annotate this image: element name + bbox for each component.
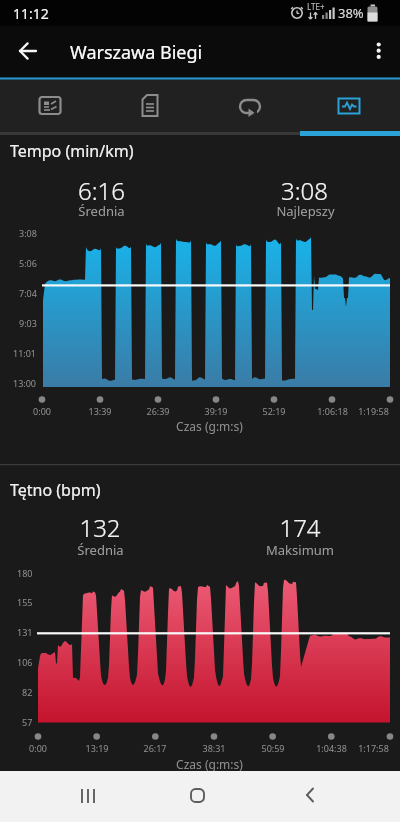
staticText: 0:00 [29, 742, 47, 754]
staticText: Czas (g:m:s) [176, 418, 243, 434]
staticText: 52:19 [262, 405, 286, 417]
staticText: Tętno (bpm) [10, 479, 101, 501]
staticText: LTE+ [307, 1, 325, 12]
staticText: 26:39 [146, 405, 170, 417]
button[interactable] [0, 80, 100, 135]
staticText: 0:00 [33, 405, 51, 417]
staticText: 9:03 [19, 317, 37, 329]
staticText: 11:01 [13, 347, 37, 359]
staticText: 7:04 [19, 287, 37, 299]
staticText: 1:04:38 [316, 742, 347, 754]
staticText: 132 [79, 511, 121, 544]
staticText: 50:59 [261, 742, 285, 754]
staticText: 39:19 [204, 405, 228, 417]
staticText: 26:17 [143, 742, 167, 754]
staticText: 38% [338, 4, 364, 22]
staticText: 106 [17, 656, 33, 668]
staticText: Średnia [77, 541, 124, 559]
staticText: 174 [279, 511, 321, 544]
staticText: 3:08 [281, 174, 328, 207]
staticText: 38:31 [202, 742, 226, 754]
staticText: 82 [22, 686, 33, 698]
staticText: 13:39 [88, 405, 112, 417]
staticText: 1:17:58 [358, 742, 389, 754]
staticText: 13:19 [85, 742, 109, 754]
staticText: 131 [17, 626, 33, 638]
staticText: 13:00 [13, 377, 37, 389]
staticText: 1:06:18 [317, 405, 348, 417]
staticText: 11:12 [13, 4, 49, 23]
staticText: 57 [22, 716, 33, 728]
staticText: Czas (g:m:s) [176, 756, 243, 772]
staticText: 155 [17, 596, 33, 608]
button[interactable] [6, 36, 48, 68]
staticText: Warszawa Biegi [70, 40, 203, 65]
staticText: 3:08 [19, 227, 37, 239]
staticText: 1:19:58 [358, 405, 389, 417]
staticText: Maksimum [266, 541, 334, 559]
staticText: Najlepszy [276, 202, 335, 220]
staticText: Średnia [78, 202, 125, 220]
button[interactable] [363, 34, 395, 68]
button[interactable] [200, 80, 300, 135]
button[interactable] [258, 771, 358, 822]
button[interactable] [300, 80, 400, 135]
staticText: 6:16 [78, 174, 125, 207]
button[interactable] [148, 771, 248, 822]
staticText: 5:06 [19, 257, 37, 269]
button[interactable] [38, 771, 138, 822]
staticText: Tempo (min/km) [10, 140, 134, 162]
button[interactable] [100, 80, 200, 135]
staticText: 180 [17, 567, 33, 579]
